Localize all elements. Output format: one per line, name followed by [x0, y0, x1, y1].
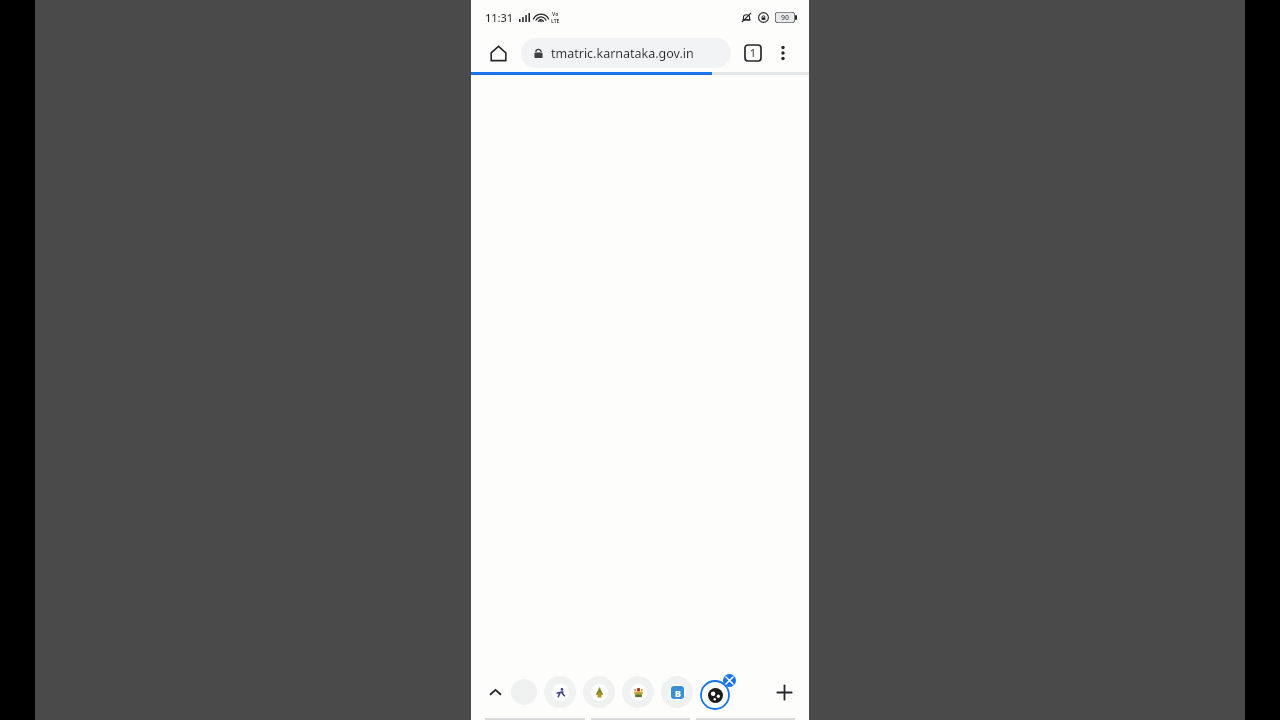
button[interactable]: Tabs, 1 open [739, 39, 767, 67]
button[interactable] [511, 679, 537, 705]
button[interactable]: Tab 3 [622, 676, 654, 708]
button[interactable]: More options [769, 39, 797, 67]
button[interactable]: Tab 1 [544, 676, 576, 708]
button[interactable]: Current tab, close [700, 674, 736, 710]
staticText: 1 [750, 46, 756, 60]
staticText: 90 [781, 13, 790, 23]
staticText: Vo [552, 11, 559, 18]
staticText: 11:31 [485, 10, 514, 25]
button[interactable]: Expand [481, 678, 509, 706]
button[interactable]: tmatric.karnataka.gov.in [521, 38, 731, 68]
staticText: LTE [551, 18, 560, 25]
button[interactable]: Home [483, 38, 513, 68]
button[interactable]: Tab 2 [583, 676, 615, 708]
button[interactable]: New tab [769, 677, 799, 707]
staticText: B [675, 687, 681, 699]
staticText: tmatric.karnataka.gov.in [551, 45, 694, 62]
button[interactable]: Tab 4 [661, 676, 693, 708]
